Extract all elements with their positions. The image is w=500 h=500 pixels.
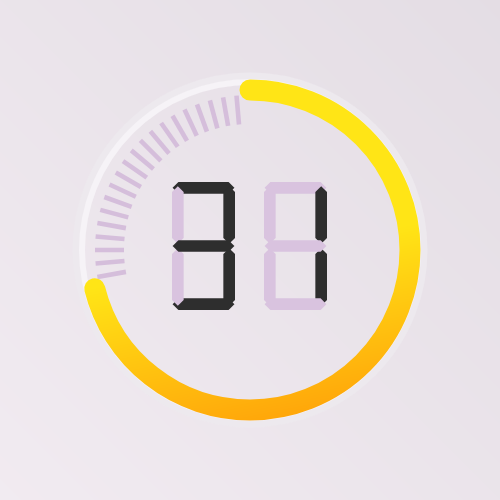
button[interactable]: Countdown timer 31 minutes remaining [0, 0, 500, 500]
